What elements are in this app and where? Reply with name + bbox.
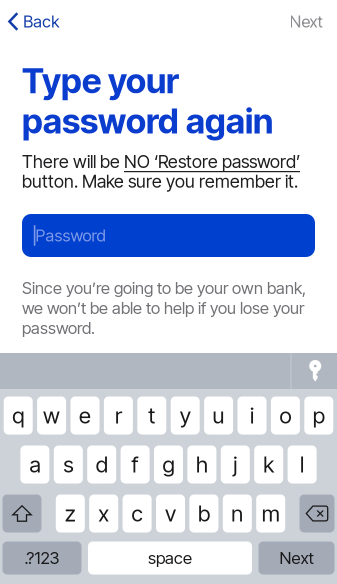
button[interactable]: Next: [273, 0, 337, 41]
staticText: q: [12, 402, 24, 429]
staticText: Back: [23, 11, 59, 31]
staticText: g: [162, 451, 174, 478]
staticText: a: [29, 451, 40, 478]
button[interactable]: d: [87, 445, 116, 483]
button[interactable]: h: [187, 445, 216, 483]
button[interactable]: r: [104, 396, 133, 434]
staticText: k: [263, 451, 274, 478]
staticText: c: [132, 500, 143, 527]
staticText: z: [65, 500, 76, 527]
button[interactable]: q: [4, 396, 33, 434]
button[interactable]: v: [156, 494, 185, 532]
staticText: Next: [279, 548, 313, 568]
staticText: d: [96, 451, 108, 478]
button[interactable]: Password: [22, 214, 315, 257]
button[interactable]: e: [70, 396, 99, 434]
button[interactable]: c: [123, 494, 152, 532]
button[interactable]: a: [20, 445, 49, 483]
staticText: w: [43, 402, 60, 429]
staticText: Next: [289, 11, 322, 31]
staticText: b: [198, 500, 210, 527]
staticText: n: [231, 500, 243, 527]
staticText: There will be NO ‘Restore password’ butt…: [22, 151, 300, 192]
button[interactable]: u: [204, 396, 233, 434]
button[interactable]: Shift: [2, 494, 41, 532]
button[interactable]: z: [56, 494, 85, 532]
button[interactable]: space: [88, 541, 252, 574]
staticText: i: [250, 402, 254, 429]
button[interactable]: n: [223, 494, 252, 532]
staticText: space: [148, 548, 192, 568]
staticText: Since you’re going to be your own bank, …: [22, 278, 306, 338]
button[interactable]: g: [154, 445, 183, 483]
staticText: Password: [35, 225, 105, 245]
staticText: .?123: [24, 548, 59, 568]
staticText: r: [115, 402, 122, 429]
button[interactable]: Delete: [299, 494, 334, 532]
button[interactable]: b: [189, 494, 218, 532]
staticText: e: [79, 402, 91, 429]
button[interactable]: s: [54, 445, 83, 483]
staticText: t: [148, 402, 155, 429]
button[interactable]: j: [221, 445, 250, 483]
staticText: m: [262, 500, 280, 527]
button[interactable]: .?123: [2, 541, 81, 574]
button[interactable]: l: [288, 445, 317, 483]
staticText: j: [233, 451, 237, 478]
staticText: v: [165, 500, 176, 527]
staticText: o: [279, 402, 291, 429]
button[interactable]: Next: [258, 541, 334, 574]
staticText: Type your password again: [22, 60, 273, 142]
button[interactable]: m: [256, 494, 285, 532]
staticText: p: [313, 402, 325, 429]
button[interactable]: p: [304, 396, 333, 434]
button[interactable]: i: [237, 396, 266, 434]
button[interactable]: k: [254, 445, 283, 483]
button[interactable]: w: [37, 396, 66, 434]
button[interactable]: y: [171, 396, 200, 434]
button[interactable]: o: [271, 396, 300, 434]
button[interactable]: Passwords: [293, 353, 337, 389]
staticText: s: [63, 451, 73, 478]
staticText: y: [180, 402, 191, 429]
button[interactable]: t: [137, 396, 166, 434]
staticText: f: [132, 451, 139, 478]
staticText: h: [196, 451, 208, 478]
button[interactable]: x: [89, 494, 118, 532]
staticText: x: [98, 500, 109, 527]
staticText: u: [213, 402, 225, 429]
staticText: l: [300, 451, 304, 478]
button[interactable]: f: [121, 445, 150, 483]
button[interactable]: Back: [0, 0, 69, 41]
